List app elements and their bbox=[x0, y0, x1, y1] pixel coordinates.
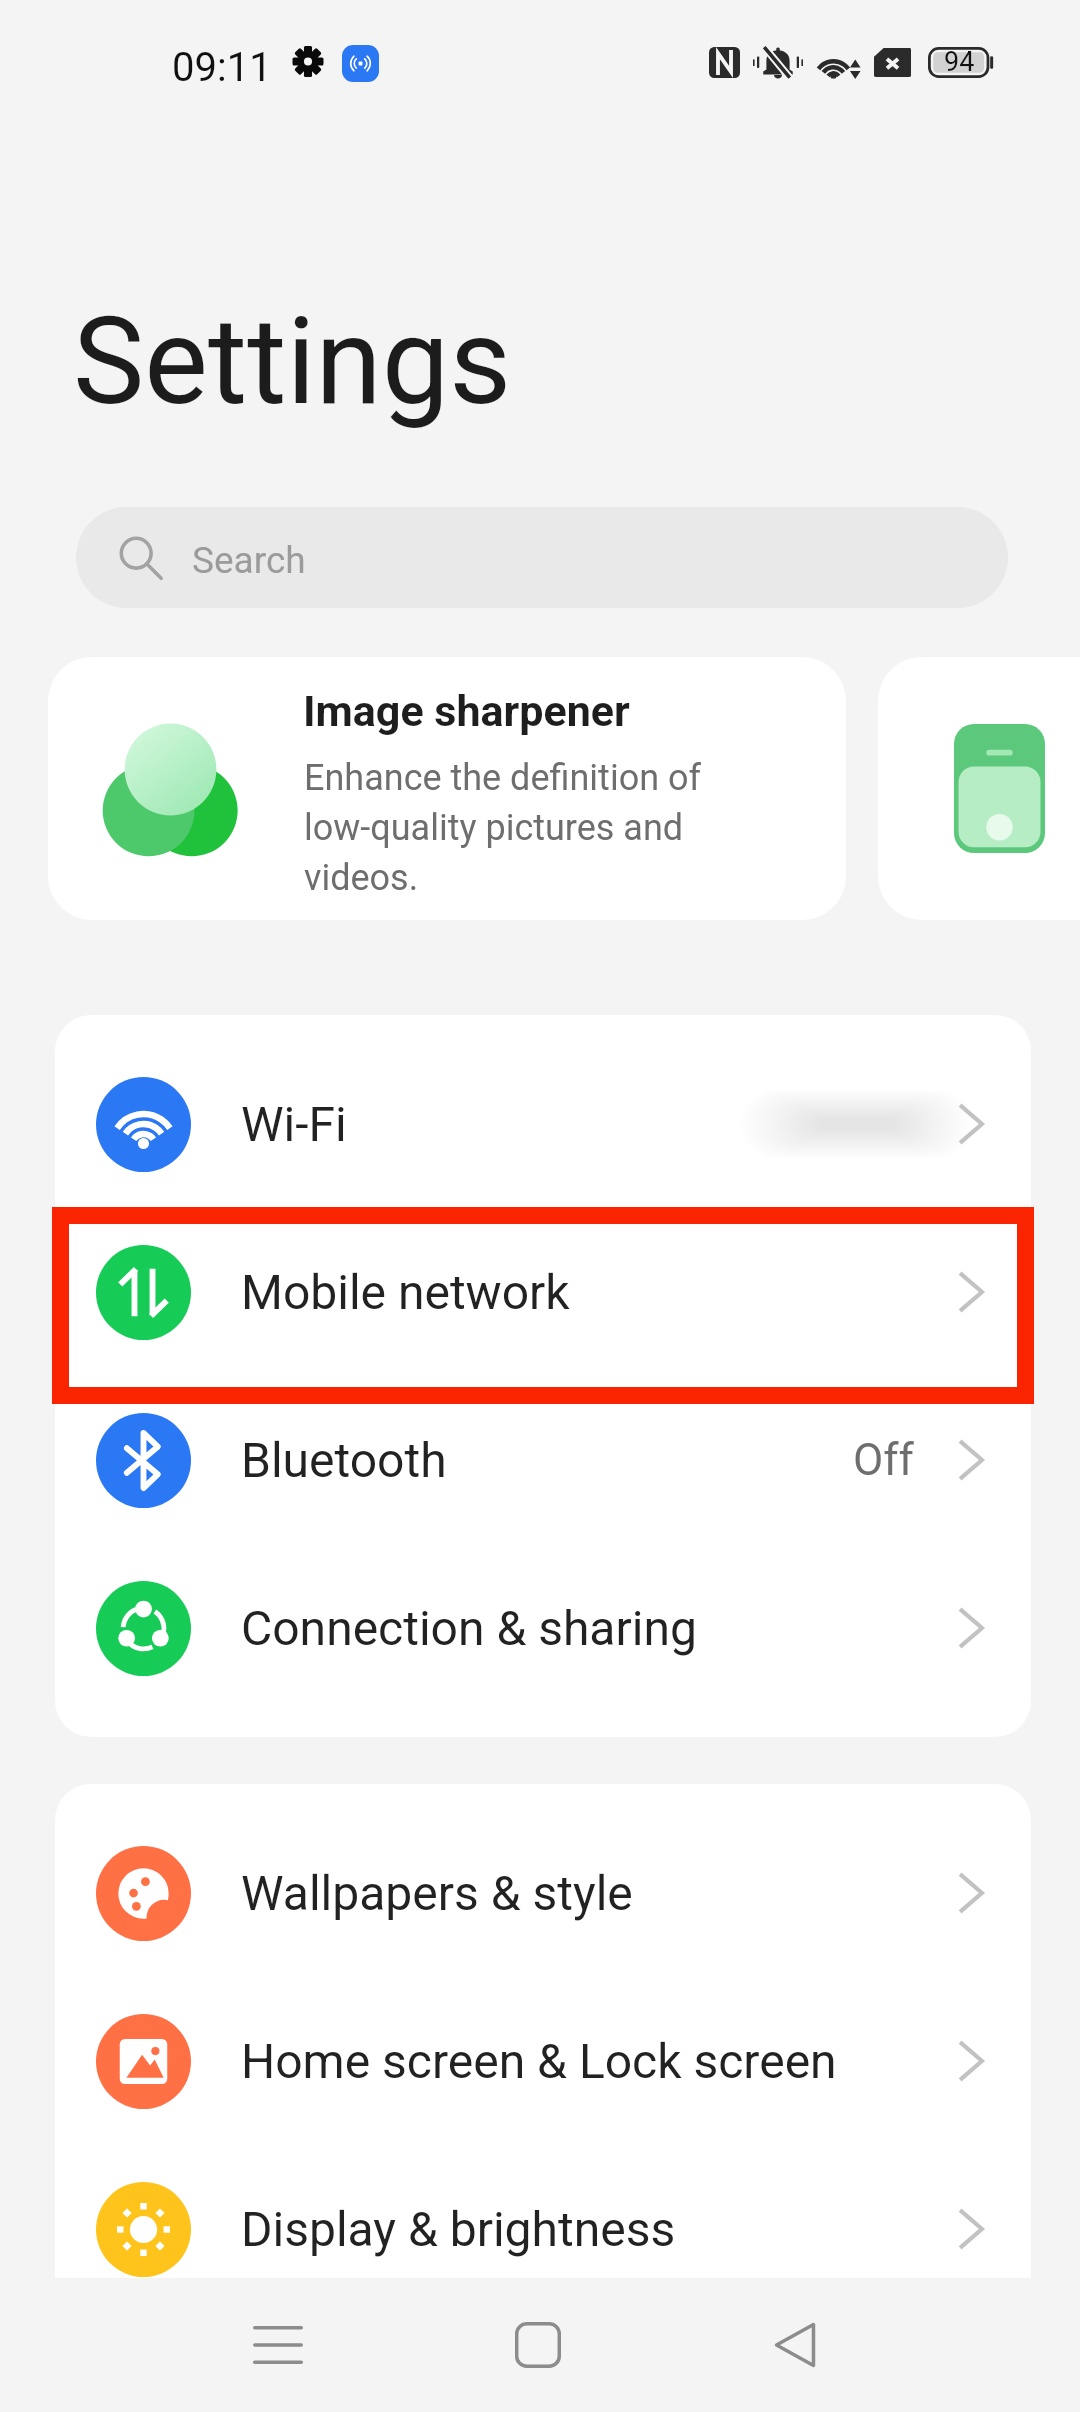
button[interactable]: Display & brightness bbox=[55, 2145, 1031, 2313]
button[interactable]: Wi-Fi bbox=[55, 1040, 1031, 1208]
staticText: Connection & sharing bbox=[241, 1600, 958, 1656]
button[interactable]: Home bbox=[473, 2278, 603, 2412]
button[interactable]: Back bbox=[730, 2278, 860, 2412]
staticText: Display & brightness bbox=[241, 2201, 958, 2257]
staticText: Wallpapers & style bbox=[241, 1865, 958, 1921]
staticText: Mobile network bbox=[241, 1264, 958, 1320]
staticText: 94 bbox=[944, 46, 975, 77]
staticText: Wi-Fi bbox=[241, 1096, 698, 1152]
button[interactable] bbox=[878, 657, 1080, 920]
staticText: 09:11 bbox=[172, 44, 272, 91]
staticText: Enhance the definition of low-quality pi… bbox=[304, 751, 702, 901]
button[interactable]: Search bbox=[76, 507, 1008, 608]
button[interactable]: Recent apps bbox=[213, 2278, 343, 2412]
staticText: Image sharpener bbox=[303, 686, 630, 736]
staticText: Settings bbox=[73, 292, 512, 433]
staticText: Bluetooth bbox=[241, 1432, 853, 1488]
staticText: Search bbox=[192, 539, 306, 582]
button[interactable]: Bluetooth bbox=[55, 1376, 1031, 1544]
staticText: Home screen & Lock screen bbox=[241, 2033, 958, 2089]
button[interactable]: Home screen & Lock screen bbox=[55, 1977, 1031, 2145]
staticText: Off bbox=[853, 1434, 914, 1486]
button[interactable]: Connection & sharing bbox=[55, 1544, 1031, 1712]
button[interactable]: Wallpapers & style bbox=[55, 1809, 1031, 1977]
button[interactable]: Image sharpener bbox=[48, 657, 846, 920]
button[interactable]: Mobile network bbox=[55, 1208, 1031, 1376]
